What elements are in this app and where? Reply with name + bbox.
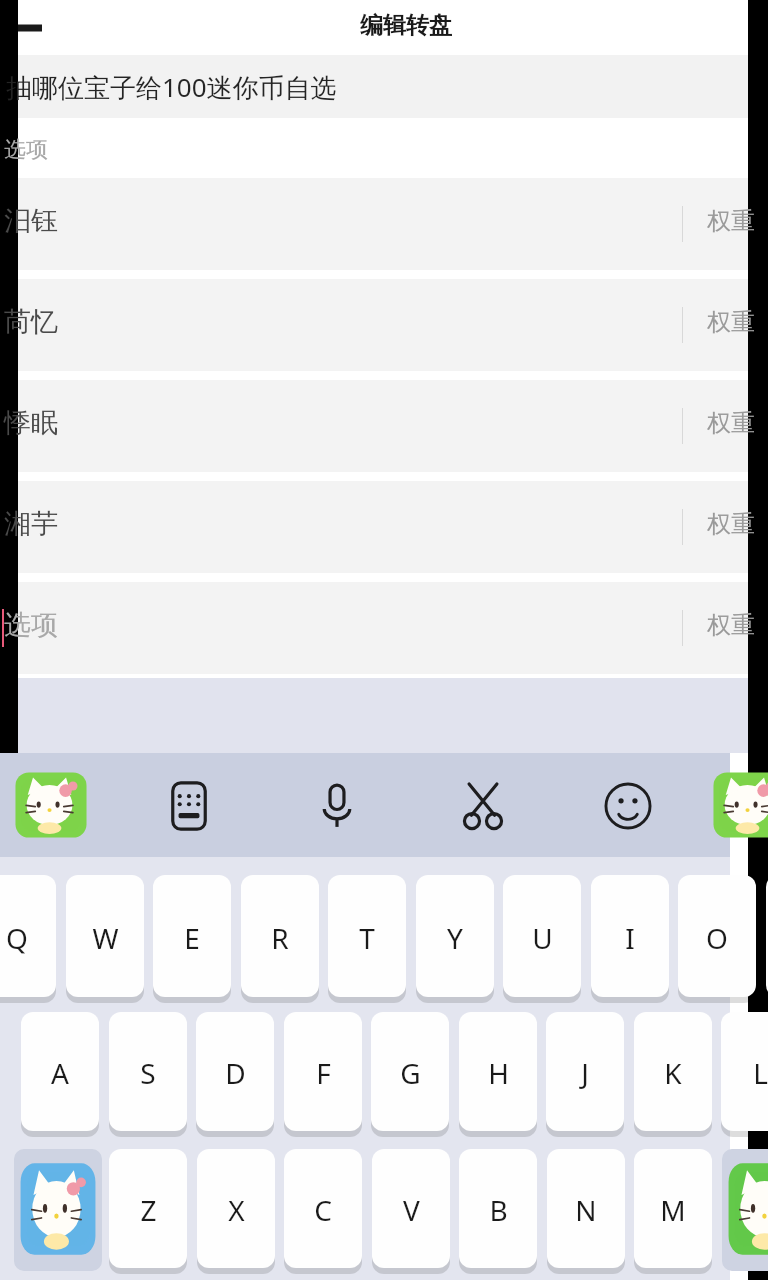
button[interactable]: 悸眠 [18,380,748,472]
staticText: B [489,1191,508,1229]
staticText: 汨钰 [4,204,58,238]
staticText: Q [6,919,28,957]
staticText: Z [140,1191,157,1229]
staticText: X [228,1191,245,1229]
staticText: 湘芋 [4,507,58,541]
button[interactable]: R [241,875,319,1000]
button[interactable]: U [503,875,581,1000]
button[interactable]: X [197,1149,275,1271]
staticText: G [400,1054,421,1092]
button[interactable]: Emoji [599,777,657,835]
staticText: C [314,1191,332,1229]
staticText: W [92,919,119,957]
staticText: F [316,1054,331,1092]
staticText: 权重 [707,408,755,438]
staticText: D [225,1054,246,1092]
button[interactable]: P [766,875,768,1000]
staticText: R [271,919,289,957]
staticText: 权重 [707,509,755,539]
staticText: 权重 [707,610,755,640]
button[interactable]: Clipboard [454,777,512,835]
button[interactable]: 选项 [18,582,748,674]
staticText: K [664,1054,682,1092]
button[interactable]: H [459,1012,537,1134]
staticText: 悸眠 [4,406,58,440]
button[interactable]: 抽哪位宝子给100迷你币自选 [18,55,748,118]
staticText: 选项 [4,136,48,164]
button[interactable]: Keyboard layout [160,777,218,835]
button[interactable]: S [109,1012,187,1134]
staticText: A [51,1054,69,1092]
staticText: M [660,1191,686,1229]
staticText: L [753,1054,768,1092]
button[interactable]: Q [0,875,56,1000]
button[interactable]: O [678,875,756,1000]
staticText: J [581,1054,589,1092]
button[interactable]: N [547,1149,625,1271]
button[interactable]: Z [109,1149,187,1271]
button[interactable]: A [21,1012,99,1134]
button[interactable]: D [196,1012,274,1134]
staticText: 苘忆 [4,305,58,339]
staticText: 抽哪位宝子给100迷你币自选 [6,69,337,105]
button[interactable]: L [721,1012,768,1134]
button[interactable]: 苘忆 [18,279,748,371]
button[interactable]: Back [8,8,48,48]
staticText: O [706,919,728,957]
button[interactable]: C [284,1149,362,1271]
button[interactable]: Voice input [308,777,366,835]
button[interactable]: T [328,875,406,1000]
button[interactable]: Shift [14,1149,102,1271]
staticText: 选项 [4,608,58,642]
staticText: U [532,919,553,957]
button[interactable]: 汨钰 [18,178,748,270]
staticText: V [403,1191,420,1229]
staticText: Y [447,919,463,957]
staticText: S [140,1054,156,1092]
staticText: H [488,1054,509,1092]
button[interactable]: Sticker [14,768,88,842]
button[interactable]: J [546,1012,624,1134]
button[interactable]: B [459,1149,537,1271]
staticText: 编辑转盘 [360,11,452,40]
staticText: 权重 [707,307,755,337]
button[interactable]: F [284,1012,362,1134]
staticText: T [359,919,375,957]
button[interactable]: Sticker [712,768,768,842]
button[interactable]: Backspace [722,1149,768,1271]
button[interactable]: M [634,1149,712,1271]
button[interactable]: 湘芋 [18,481,748,573]
staticText: I [625,919,635,957]
staticText: N [575,1191,597,1229]
staticText: 权重 [707,206,755,236]
button[interactable]: W [66,875,144,1000]
button[interactable]: V [372,1149,450,1271]
staticText: E [184,919,200,957]
button[interactable]: Y [416,875,494,1000]
button[interactable]: G [371,1012,449,1134]
button[interactable]: K [634,1012,712,1134]
button[interactable]: E [153,875,231,1000]
button[interactable]: I [591,875,669,1000]
